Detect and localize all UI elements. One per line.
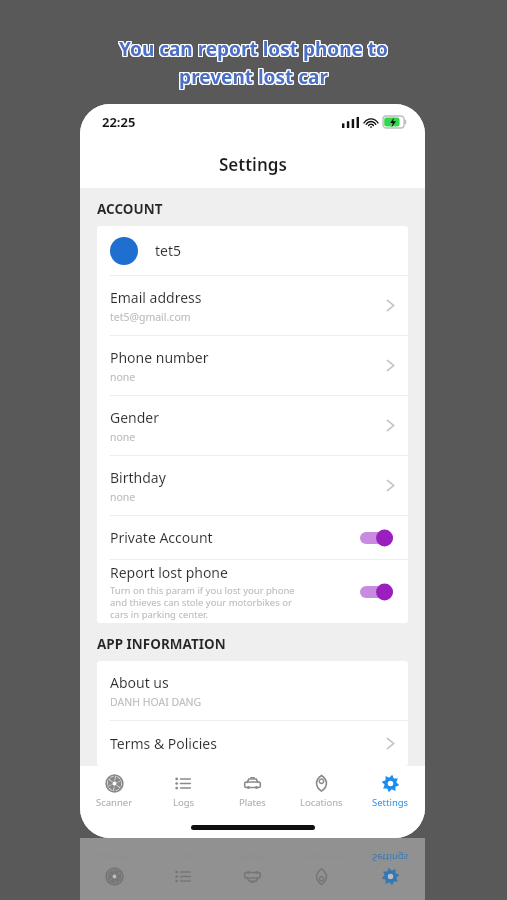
staticText: You can report lost phone to xyxy=(120,36,389,62)
staticText: Logs xyxy=(173,796,195,809)
button[interactable]: Toggle xyxy=(360,583,393,601)
button[interactable]: Private Account xyxy=(97,516,408,559)
button[interactable]: Locations xyxy=(287,766,356,816)
staticText: You can report lost phone to xyxy=(118,35,387,61)
staticText: prevent lost car xyxy=(178,64,327,90)
staticText: none xyxy=(110,430,136,444)
staticText: prevent lost car xyxy=(179,63,328,89)
button[interactable]: tet5 xyxy=(97,226,408,275)
staticText: You can report lost phone to xyxy=(118,36,387,62)
staticText: Settings xyxy=(219,153,287,176)
staticText: You can report lost phone to xyxy=(120,35,389,61)
staticText: Private Account xyxy=(110,528,213,547)
staticText: APP INFORMATION xyxy=(97,635,226,653)
staticText: Settings xyxy=(372,796,409,809)
button[interactable]: Toggle xyxy=(360,529,393,547)
staticText: Phone number xyxy=(110,348,209,367)
staticText: Plates xyxy=(239,796,266,809)
staticText: prevent lost car xyxy=(180,63,329,89)
button[interactable]: Settings xyxy=(356,766,425,816)
staticText: You can report lost phone to xyxy=(119,36,388,62)
staticText: prevent lost car xyxy=(179,65,328,91)
staticText: DANH HOAI DANG xyxy=(110,695,202,709)
button[interactable]: Logs xyxy=(149,766,218,816)
staticText: Scanner xyxy=(96,796,133,809)
staticText: tet5 xyxy=(155,241,182,260)
staticText: prevent lost car xyxy=(178,65,327,91)
button[interactable]: Birthday xyxy=(97,456,408,515)
staticText: Gender xyxy=(110,408,160,427)
staticText: none xyxy=(110,490,136,504)
staticText: Email address xyxy=(110,288,202,307)
staticText: prevent lost car xyxy=(180,65,329,91)
staticText: 22:25 xyxy=(102,113,136,131)
staticText: You can report lost phone to xyxy=(119,37,388,63)
staticText: prevent lost car xyxy=(180,64,329,90)
staticText: You can report lost phone to xyxy=(118,37,387,63)
staticText: Settings xyxy=(372,851,409,864)
staticText: Turn on this param if you lost your phon… xyxy=(110,584,295,621)
staticText: prevent lost car xyxy=(178,63,327,89)
button[interactable]: Gender xyxy=(97,396,408,455)
staticText: tet5@gmail.com xyxy=(110,310,191,324)
staticText: Birthday xyxy=(110,468,166,487)
button[interactable]: Report lost phone xyxy=(97,560,408,623)
staticText: none xyxy=(110,370,136,384)
staticText: You can report lost phone to xyxy=(119,35,388,61)
button[interactable]: Plates xyxy=(218,766,287,816)
button[interactable]: Terms & Policies xyxy=(97,721,408,766)
button[interactable]: About us xyxy=(97,661,408,720)
staticText: You can report lost phone to xyxy=(120,37,389,63)
button[interactable]: Email address xyxy=(97,276,408,335)
staticText: prevent lost car xyxy=(179,64,328,90)
staticText: Report lost phone xyxy=(110,563,228,582)
staticText: ACCOUNT xyxy=(97,200,163,218)
button[interactable]: Scanner xyxy=(80,766,149,816)
staticText: About us xyxy=(110,673,169,692)
button[interactable]: Phone number xyxy=(97,336,408,395)
staticText: Locations xyxy=(300,796,343,809)
staticText: Terms & Policies xyxy=(110,734,217,753)
